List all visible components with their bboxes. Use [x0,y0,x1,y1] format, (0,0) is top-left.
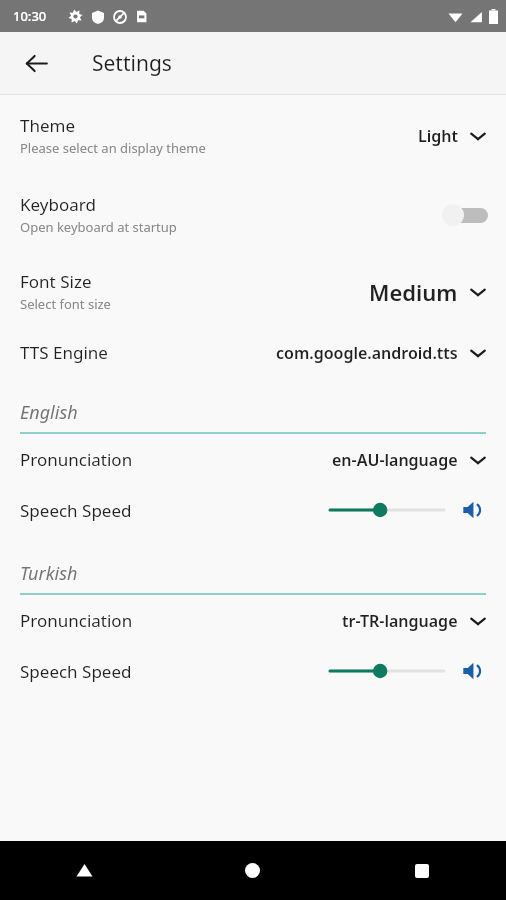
staticText: Settings [92,49,172,78]
button[interactable]: Pronunciation [0,603,506,638]
button[interactable]: Play speech sample [458,495,488,525]
staticText: Pronunciation [20,609,133,632]
button[interactable]: Speech speed slider [330,658,444,684]
staticText: Select font size [20,295,111,313]
button[interactable]: Speech speed slider [330,497,444,523]
button[interactable]: Home [168,841,337,900]
staticText: Please select an display theme [20,139,206,157]
button[interactable]: Back [14,41,58,85]
staticText: Medium [369,277,458,307]
staticText: 10:30 [13,7,47,25]
staticText: tr-TR-language [342,610,458,632]
staticText: Theme [20,114,76,137]
button[interactable]: Theme [0,108,506,163]
button[interactable]: TTS Engine [0,335,506,370]
button[interactable]: Pronunciation [0,442,506,477]
staticText: com.google.android.tts [276,342,458,364]
staticText: English [20,400,78,425]
button[interactable]: Back [0,841,168,900]
button[interactable]: Speech Speed [0,652,506,690]
button[interactable]: Keyboard [0,187,506,242]
button[interactable]: Keyboard at startup toggle [442,202,488,228]
staticText: Light [418,125,458,147]
button[interactable]: Font Size [0,264,506,319]
staticText: Pronunciation [20,448,133,471]
button[interactable]: Play speech sample [458,656,488,686]
staticText: TTS Engine [20,341,108,364]
staticText: Open keyboard at startup [20,218,177,236]
staticText: Turkish [20,561,78,586]
staticText: Keyboard [20,193,96,216]
staticText: en-AU-language [332,449,458,471]
staticText: Speech Speed [20,660,330,683]
button[interactable]: Recent apps [337,841,506,900]
staticText: Speech Speed [20,499,330,522]
staticText: Font Size [20,270,92,293]
button[interactable]: Speech Speed [0,491,506,529]
